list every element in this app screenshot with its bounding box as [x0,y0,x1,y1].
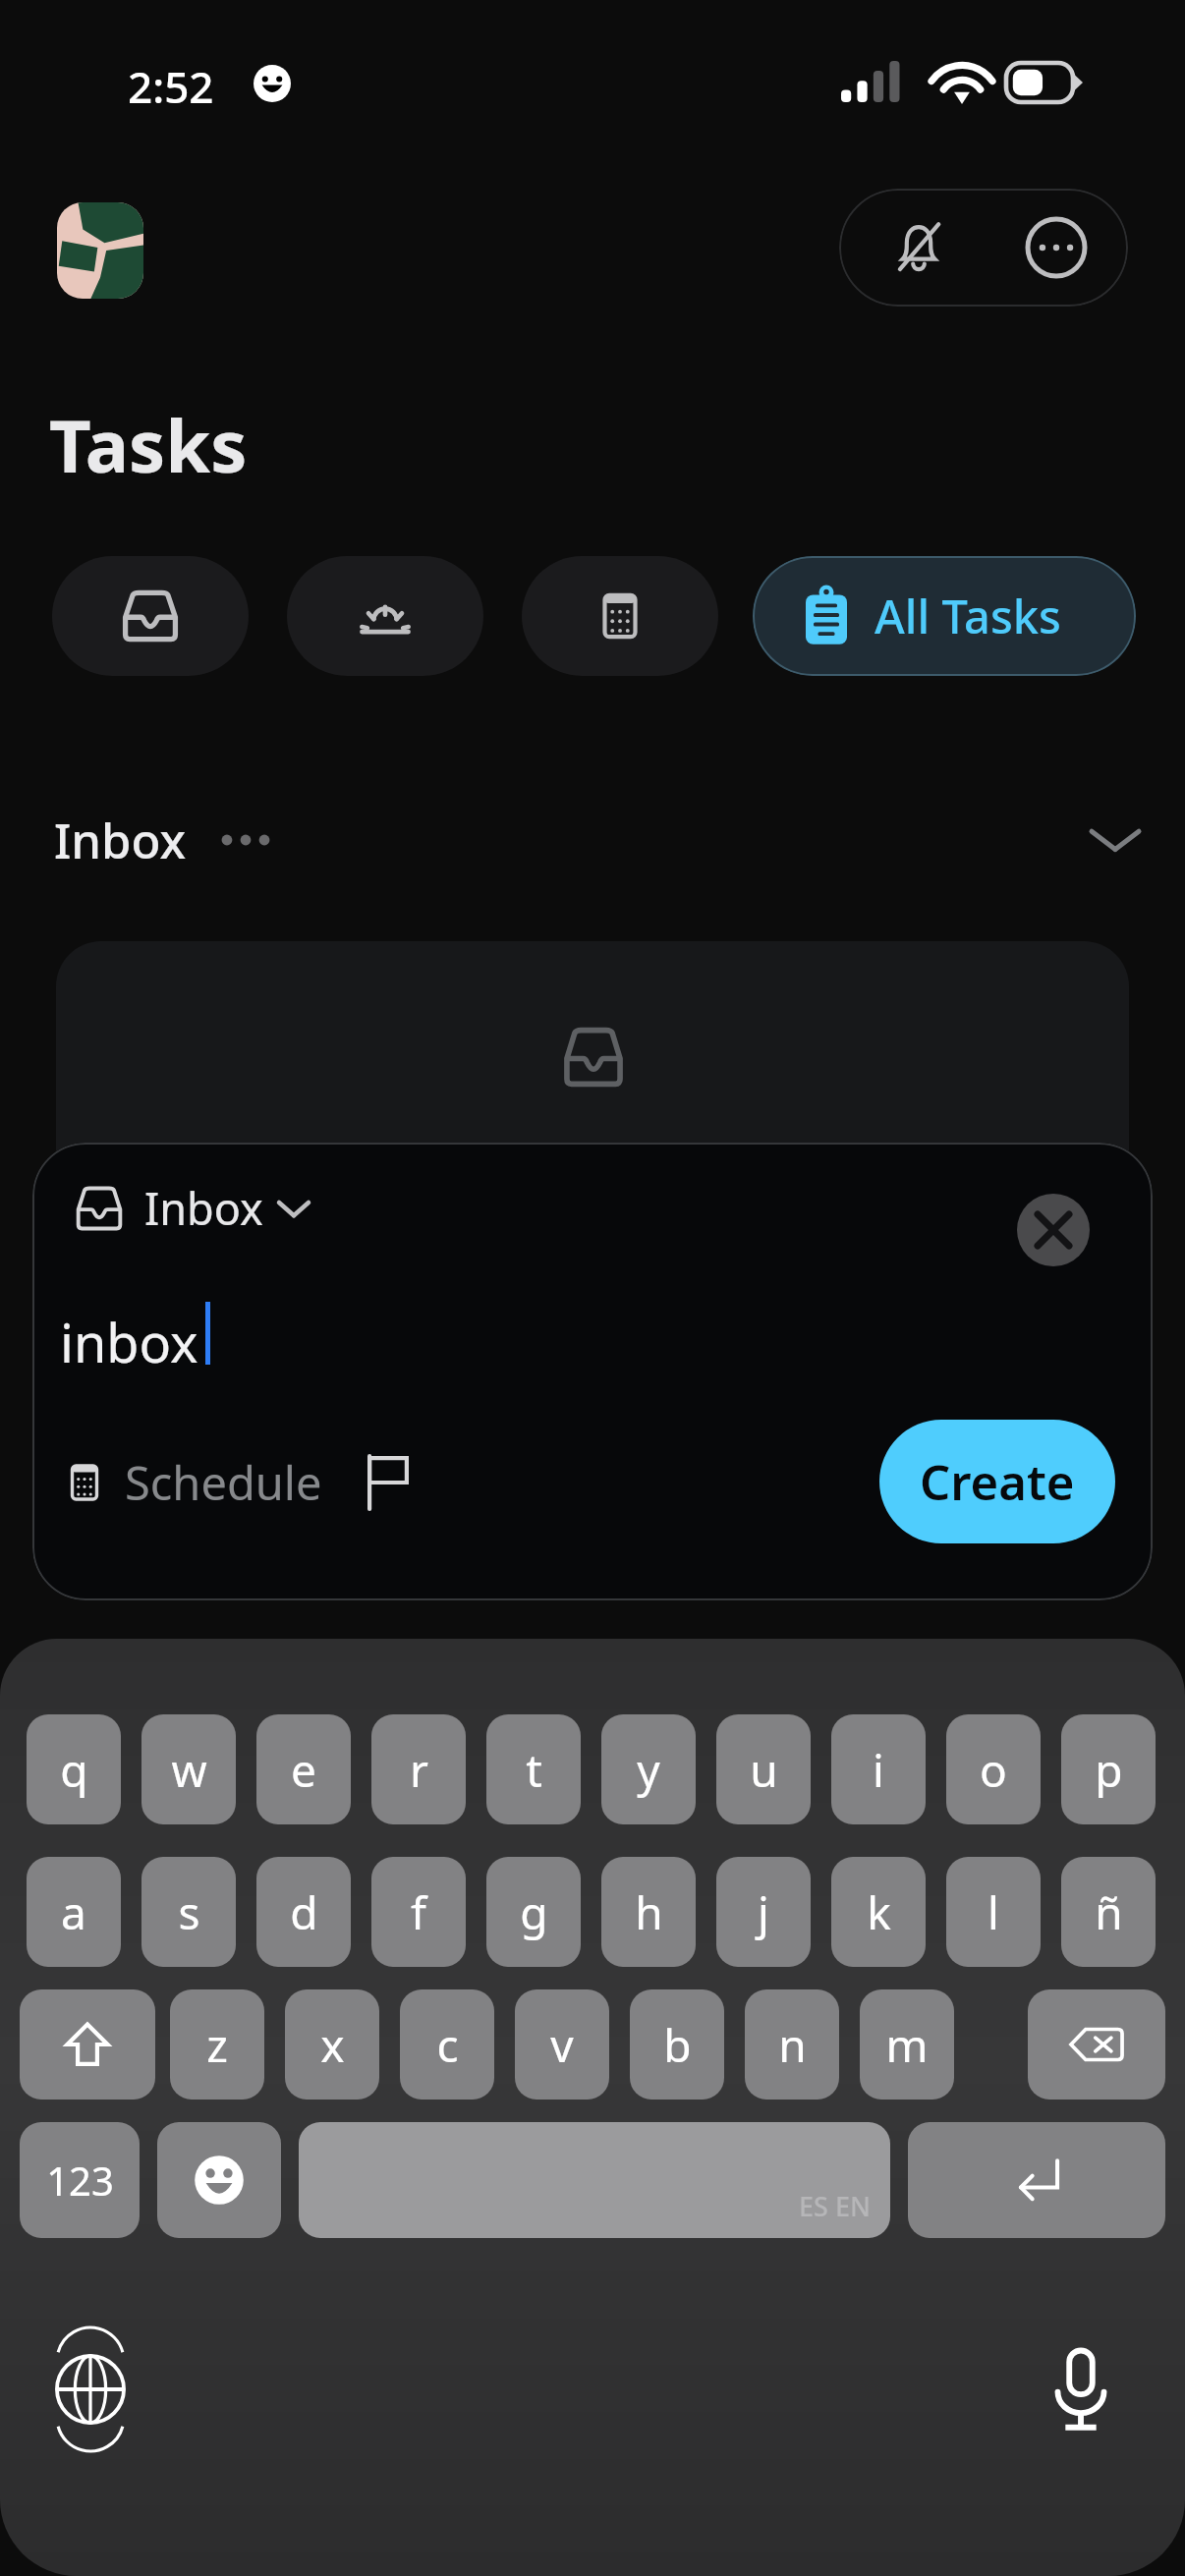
button[interactable]: i [831,1714,926,1824]
staticText: a [61,1881,86,1943]
staticText: 123 [46,2154,114,2207]
staticText: w [171,1739,207,1801]
button[interactable]: Flag [358,1452,419,1513]
button[interactable]: z [170,1989,264,2100]
button[interactable]: g [486,1857,581,1967]
staticText: i [873,1739,884,1801]
staticText: t [526,1739,542,1801]
staticText: b [663,2014,692,2076]
staticText: Schedule [125,1451,322,1514]
button[interactable]: ñ [1061,1857,1156,1967]
button[interactable]: More options [985,189,1128,307]
button[interactable]: a [27,1857,121,1967]
button[interactable]: h [601,1857,696,1967]
button[interactable]: y [601,1714,696,1824]
button[interactable]: v [515,1989,609,2100]
button[interactable]: o [946,1714,1041,1824]
button[interactable]: Notifications off [847,189,990,307]
button[interactable]: Inbox [74,1178,310,1238]
staticText: x [320,2014,345,2076]
button[interactable]: Shift [20,1989,155,2100]
button[interactable]: Space [299,2122,890,2238]
button[interactable]: u [716,1714,811,1824]
button[interactable]: w [141,1714,236,1824]
staticText: q [60,1739,88,1801]
staticText: r [410,1739,428,1801]
staticText: 2:52 [128,57,214,116]
staticText: p [1095,1739,1123,1801]
staticText: n [778,2014,807,2076]
button[interactable]: q [27,1714,121,1824]
staticText: z [206,2014,228,2076]
staticText: y [637,1739,660,1801]
button[interactable]: Enter [908,2122,1165,2238]
staticText: inbox [60,1306,198,1378]
button[interactable]: Voice input [1024,2332,1138,2446]
button[interactable]: Backspace [1028,1989,1165,2100]
button[interactable]: s [141,1857,236,1967]
button[interactable]: Inbox filter [52,556,249,676]
staticText: k [867,1881,891,1943]
staticText: h [635,1881,663,1943]
button[interactable]: Change language [33,2332,147,2446]
button[interactable]: t [486,1714,581,1824]
staticText: l [987,1881,999,1943]
button[interactable]: c [400,1989,494,2100]
staticText: u [750,1739,778,1801]
button[interactable]: d [256,1857,351,1967]
staticText: m [885,2014,929,2076]
staticText: d [290,1881,318,1943]
button[interactable]: l [946,1857,1041,1967]
button[interactable]: 123 [20,2122,140,2238]
staticText: Inbox [144,1178,263,1238]
button[interactable]: j [716,1857,811,1967]
staticText: All Tasks [875,585,1061,647]
staticText: Tasks [49,395,248,494]
button[interactable]: f [371,1857,466,1967]
button[interactable]: All Tasks [753,556,1136,676]
staticText: s [178,1881,200,1943]
button[interactable]: p [1061,1714,1156,1824]
button[interactable]: Inbox [0,784,1185,896]
button[interactable]: Profile [57,202,143,299]
button[interactable]: x [285,1989,379,2100]
button[interactable]: n [745,1989,839,2100]
button[interactable]: b [630,1989,724,2100]
button[interactable]: r [371,1714,466,1824]
button[interactable]: Today filter [287,556,483,676]
button[interactable]: Emoji [157,2122,281,2238]
staticText: Create [920,1449,1075,1515]
button[interactable]: m [860,1989,954,2100]
button[interactable]: k [831,1857,926,1967]
staticText: v [550,2014,574,2076]
staticText: e [291,1739,316,1801]
staticText: Inbox [54,808,187,873]
staticText: j [758,1881,769,1943]
button[interactable]: Close [1017,1194,1090,1266]
staticText: ñ [1095,1881,1123,1943]
button[interactable]: Calendar filter [522,556,718,676]
button[interactable]: Schedule [60,1451,322,1514]
staticText: f [411,1881,426,1943]
staticText: o [980,1739,1007,1801]
button[interactable]: Create [879,1420,1115,1543]
staticText: c [436,2014,459,2076]
staticText: g [520,1881,548,1943]
button[interactable]: e [256,1714,351,1824]
staticText: ES EN [799,2188,871,2224]
